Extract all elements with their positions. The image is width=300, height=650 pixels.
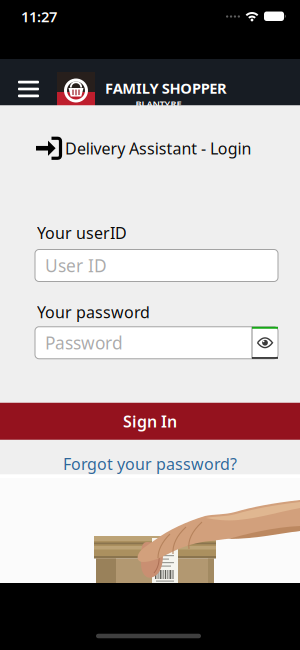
staticText: User ID	[45, 254, 107, 277]
staticText: Delivery Assistant - Login	[65, 138, 251, 159]
button[interactable]: Forgot your password?	[0, 454, 300, 474]
button[interactable]: Sign In	[0, 403, 300, 440]
staticText: BLANTYRE	[135, 98, 181, 110]
button[interactable]: Menu	[10, 72, 46, 106]
button[interactable]: User ID	[35, 249, 278, 281]
button[interactable]: Show password	[252, 327, 277, 359]
button[interactable]: Password	[35, 327, 245, 359]
staticText: Forgot your password?	[63, 453, 237, 474]
staticText: Password	[45, 331, 123, 354]
staticText: 11:27	[21, 7, 57, 26]
staticText: FAMILY SHOPPER	[105, 78, 227, 98]
staticText: Sign In	[123, 411, 177, 432]
staticText: Your userID	[37, 222, 127, 243]
staticText: Your password	[37, 301, 150, 323]
